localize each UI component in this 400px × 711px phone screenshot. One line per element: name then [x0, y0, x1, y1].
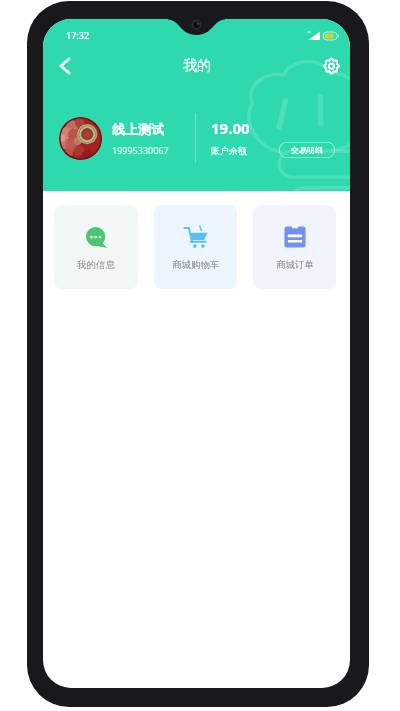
staticText: 商城订单 — [276, 259, 314, 271]
button[interactable]: Settings — [313, 51, 349, 81]
staticText: 17:32 — [66, 29, 90, 41]
staticText: 19.00 — [211, 118, 250, 138]
button[interactable]: 交易明细 — [279, 142, 335, 158]
staticText: 我的 — [183, 57, 211, 75]
button[interactable]: 商城购物车 — [154, 205, 237, 289]
staticText: 我的信息 — [77, 259, 115, 271]
staticText: 商城购物车 — [172, 259, 220, 271]
staticText: 19995330067 — [112, 144, 169, 156]
button[interactable]: 我的信息 — [54, 205, 138, 289]
button[interactable]: Back — [46, 51, 82, 81]
staticText: 交易明细 — [291, 145, 323, 155]
button[interactable]: 商城订单 — [253, 205, 336, 289]
staticText: 账户余额 — [211, 145, 247, 156]
staticText: 线上测试 — [112, 121, 164, 137]
